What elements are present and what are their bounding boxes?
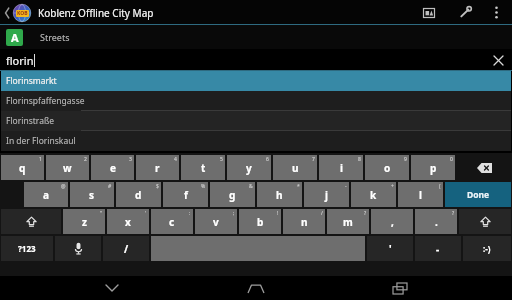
staticText: % [201, 183, 206, 190]
staticText: Florinsmarkt [6, 75, 57, 87]
button[interactable]: Recent apps [377, 276, 423, 300]
staticText: ; [233, 210, 235, 217]
staticText: Florinstraße [6, 115, 55, 127]
staticText: ? [452, 210, 455, 217]
staticText: 4 [174, 156, 177, 163]
button[interactable]: a [24, 182, 68, 207]
button[interactable]: Home [233, 276, 279, 300]
staticText: ?123 [18, 243, 36, 254]
button[interactable]: Back [2, 0, 12, 25]
staticText: c [169, 215, 175, 229]
staticText: p [430, 161, 437, 175]
button[interactable]: l [398, 182, 443, 207]
button[interactable]: h [257, 182, 302, 207]
staticText: e [110, 161, 116, 175]
staticText: n [301, 215, 308, 229]
staticText: b [257, 215, 264, 229]
button[interactable]: k [351, 182, 396, 207]
staticText: - [436, 242, 440, 256]
button[interactable]: Voice input [55, 236, 101, 261]
button[interactable]: y [227, 155, 271, 180]
staticText: y [246, 161, 252, 175]
button[interactable]: In der Florinskaul [1, 131, 511, 151]
button[interactable]: p [411, 155, 455, 180]
button[interactable]: ' [367, 236, 413, 261]
staticText: + [391, 183, 394, 190]
button[interactable]: Map view [416, 0, 442, 25]
button[interactable]: - [415, 236, 461, 261]
staticText: v [213, 215, 219, 229]
button[interactable]: i [319, 155, 363, 180]
staticText: ' [389, 242, 392, 256]
staticText: m [343, 215, 353, 229]
button[interactable]: f [163, 182, 208, 207]
staticText: / [124, 242, 129, 256]
button[interactable]: Settings [452, 0, 478, 25]
button[interactable]: n [283, 209, 325, 234]
button[interactable]: u [273, 155, 317, 180]
staticText: i [340, 161, 343, 175]
staticText: x [125, 215, 131, 229]
staticText: l [419, 188, 422, 202]
staticText: Done [467, 189, 490, 201]
staticText: q [19, 161, 26, 175]
staticText: 0 [450, 156, 453, 163]
staticText: , [391, 215, 394, 229]
staticText: f [184, 188, 188, 202]
button[interactable]: o [365, 155, 409, 180]
button[interactable]: Florinstraße [1, 111, 511, 131]
staticText: 7 [312, 156, 315, 163]
button[interactable]: More options [486, 0, 506, 25]
button[interactable]: c [151, 209, 193, 234]
button[interactable]: Hide keyboard [89, 276, 135, 300]
button[interactable]: v [195, 209, 237, 234]
button[interactable]: Clear [487, 49, 509, 71]
button[interactable]: e [91, 155, 134, 180]
staticText: j [325, 188, 328, 202]
staticText: / [321, 210, 323, 217]
staticText: # [108, 183, 112, 190]
button[interactable]: ?123 [1, 236, 53, 261]
button[interactable]: Florinsmarkt [1, 71, 511, 91]
staticText: 5 [220, 156, 223, 163]
button[interactable]: g [210, 182, 255, 207]
staticText: h [276, 188, 283, 202]
staticText: t [201, 161, 206, 175]
button[interactable]: :-) [463, 236, 511, 261]
staticText: 3 [129, 156, 132, 163]
staticText: $ [156, 183, 159, 190]
staticText: 1 [39, 156, 42, 163]
button[interactable]: z [63, 209, 105, 234]
button[interactable]: , [371, 209, 413, 234]
staticText: 9 [404, 156, 407, 163]
button[interactable]: j [304, 182, 349, 207]
staticText: & [249, 183, 253, 190]
button[interactable]: x [107, 209, 149, 234]
button[interactable]: A [0, 25, 512, 49]
button[interactable]: Done [445, 182, 511, 207]
staticText: ' [145, 210, 147, 217]
staticText: s [89, 188, 95, 202]
button[interactable]: florin [0, 49, 512, 71]
staticText: - [345, 183, 347, 190]
button[interactable]: w [46, 155, 89, 180]
button[interactable]: t [181, 155, 225, 180]
staticText: : [189, 210, 191, 217]
button[interactable]: b [239, 209, 281, 234]
button[interactable]: m [327, 209, 369, 234]
staticText: r [155, 161, 160, 175]
button[interactable]: Florinspfaffengasse [1, 91, 511, 111]
button[interactable]: s [70, 182, 114, 207]
button[interactable]: d [116, 182, 161, 207]
button[interactable]: Shift [1, 209, 61, 234]
button[interactable]: Backspace [457, 155, 511, 180]
button[interactable]: . [415, 209, 457, 234]
staticText: a [43, 188, 49, 202]
button[interactable]: Shift [459, 209, 511, 234]
staticText: 6 [266, 156, 269, 163]
button[interactable]: q [1, 155, 44, 180]
button[interactable]: / [103, 236, 149, 261]
staticText: ( [439, 183, 441, 190]
button[interactable]: r [136, 155, 179, 180]
